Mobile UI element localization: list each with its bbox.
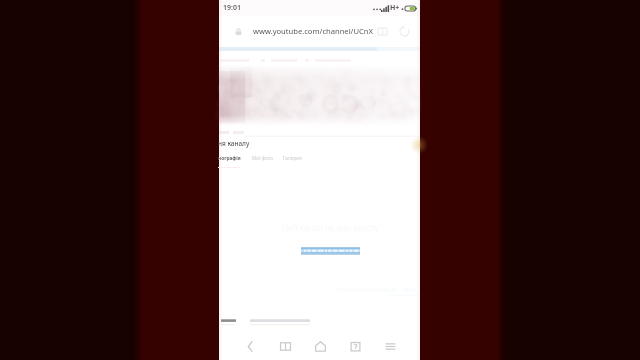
button[interactable]: Bookmarks (272, 333, 298, 359)
button[interactable]: Мої фото (252, 155, 272, 168)
button[interactable]: Tabs (342, 333, 368, 359)
staticText: 19:01 (223, 3, 241, 13)
staticText: ня каналу (218, 139, 250, 148)
button[interactable]: Back (237, 333, 263, 359)
staticText: Мої фото (252, 155, 272, 162)
button[interactable]: Галерея (283, 155, 303, 168)
staticText: Галерея (283, 155, 302, 162)
button[interactable]: Menu (377, 333, 403, 359)
button[interactable]: нографія (218, 155, 240, 168)
button[interactable] (301, 247, 360, 255)
button[interactable]: Home (307, 333, 333, 359)
button[interactable]: Reader mode (374, 23, 390, 39)
staticText: H+ (390, 3, 400, 13)
button[interactable]: Reload (396, 23, 412, 39)
staticText: нографія (218, 155, 240, 162)
staticText: www.youtube.com/channel/UCnX (253, 26, 373, 36)
